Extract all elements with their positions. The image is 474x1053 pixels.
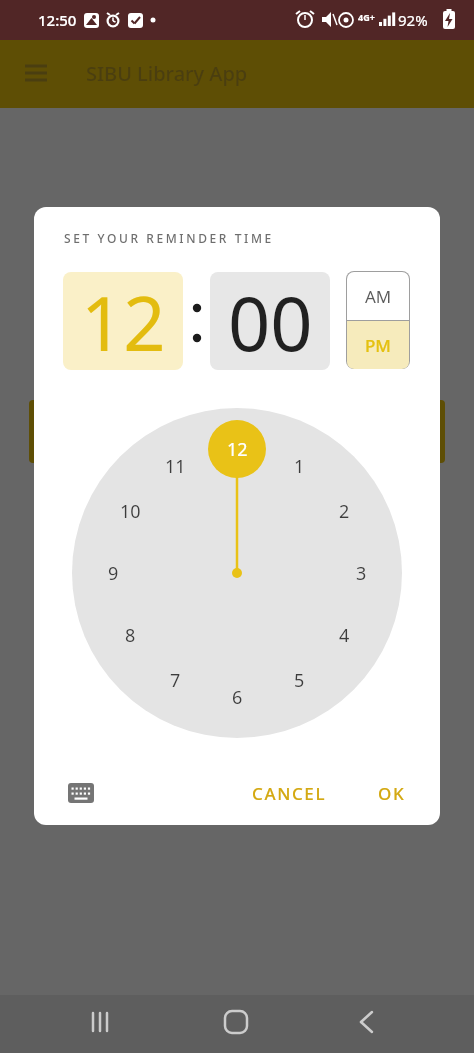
button[interactable]: 7 — [157, 668, 193, 692]
button[interactable]: 9 — [95, 561, 131, 585]
staticText: AM — [365, 285, 392, 308]
staticText: 7 — [170, 668, 181, 692]
button[interactable]: 2 — [326, 499, 362, 523]
button[interactable]: 12 — [63, 272, 183, 370]
button[interactable]: 4 — [326, 623, 362, 647]
staticText: 2 — [339, 499, 350, 523]
button[interactable]: 5 — [281, 668, 317, 692]
staticText: OK — [378, 782, 406, 805]
staticText: 9 — [108, 561, 119, 585]
button[interactable]: 6 — [219, 685, 255, 709]
button[interactable]: 1 — [281, 454, 317, 478]
button[interactable]: AM — [347, 272, 409, 320]
button[interactable]: 11 — [157, 454, 193, 478]
staticText: 3 — [356, 561, 367, 585]
staticText: 5 — [294, 668, 305, 692]
button[interactable] — [64, 779, 98, 807]
button[interactable]: 3 — [343, 561, 379, 585]
button[interactable]: PM — [347, 321, 409, 369]
staticText: 00 — [228, 272, 313, 370]
staticText: 6 — [232, 685, 243, 709]
button[interactable]: 8 — [112, 623, 148, 647]
staticText: CANCEL — [252, 782, 327, 805]
staticText: PM — [365, 334, 391, 357]
staticText: 4G+ — [358, 11, 375, 23]
button[interactable]: CANCEL — [234, 775, 344, 811]
button[interactable]: OK — [357, 775, 427, 811]
staticText: 11 — [165, 454, 186, 478]
staticText: 10 — [120, 499, 141, 523]
button[interactable] — [18, 60, 54, 88]
staticText: 8 — [125, 623, 136, 647]
button[interactable]: 00 — [210, 272, 330, 370]
staticText: 12:50 — [38, 10, 77, 30]
button[interactable]: 12 — [219, 437, 255, 461]
button[interactable]: 10 — [112, 499, 148, 523]
staticText: SET YOUR REMINDER TIME — [64, 230, 274, 246]
staticText: 1 — [294, 454, 305, 478]
staticText: 92% — [398, 10, 428, 30]
staticText: SIBU Library App — [86, 60, 248, 87]
staticText: 4 — [339, 623, 350, 647]
staticText: 12 — [227, 437, 248, 461]
staticText: 12 — [81, 272, 166, 370]
